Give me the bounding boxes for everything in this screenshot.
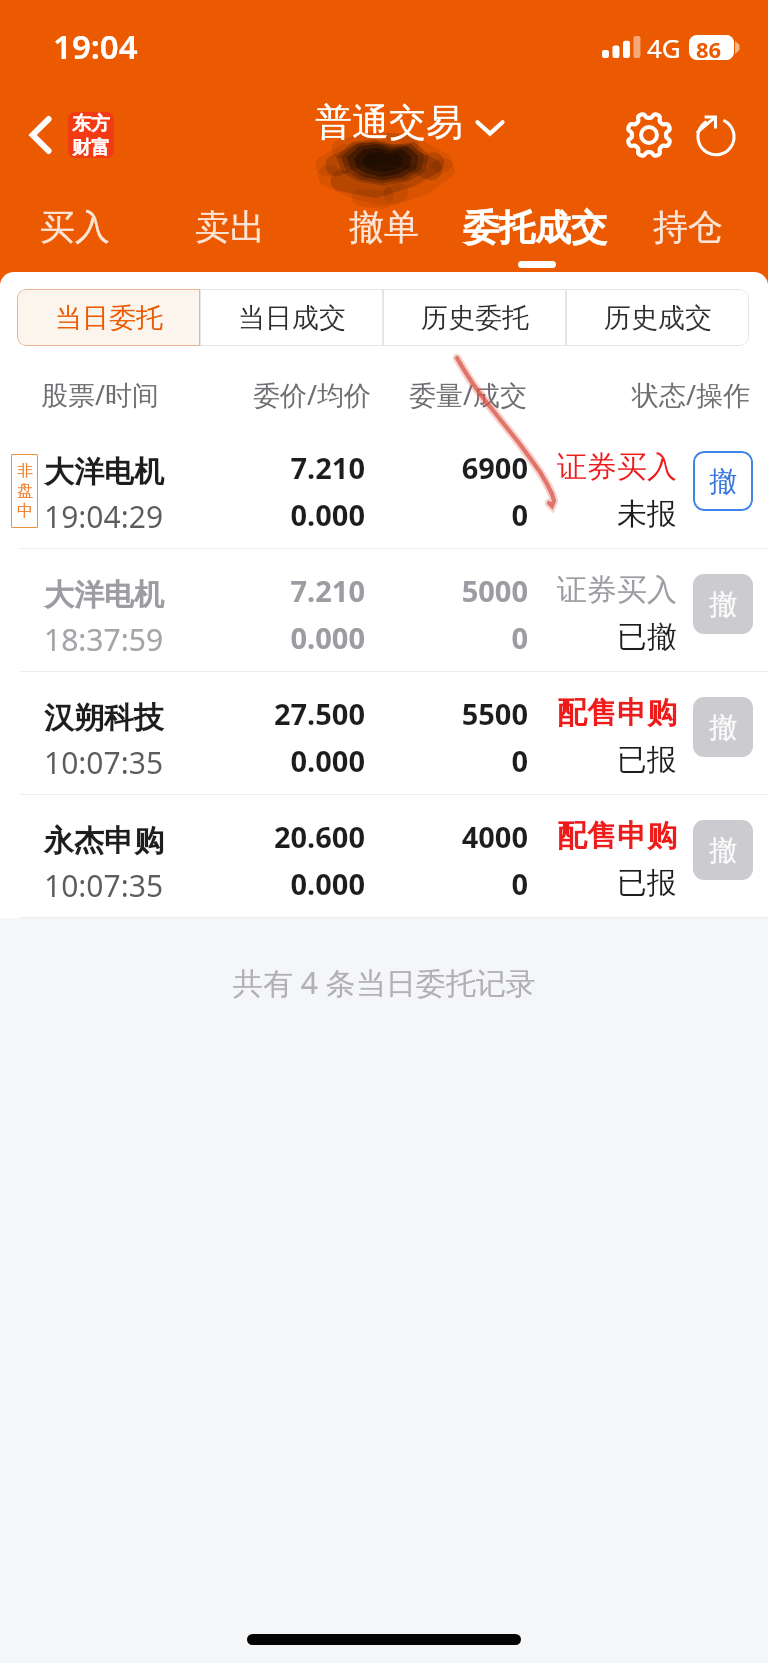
button[interactable]: 撤单 [693, 574, 753, 634]
staticText: 7.210 [290, 448, 365, 487]
staticText: 大洋电机 [44, 576, 164, 614]
button[interactable]: 汉朔科技 [0, 672, 768, 795]
staticText: 撤 [709, 833, 737, 868]
staticText: 配售申购 [557, 694, 677, 732]
button[interactable]: 撤单 [693, 697, 753, 757]
staticText: 4000 [461, 817, 528, 856]
staticText: 永杰申购 [44, 822, 164, 860]
staticText: 0.000 [290, 864, 365, 903]
button[interactable]: 卖出 [173, 188, 287, 266]
button[interactable]: 普通交易 [315, 99, 509, 146]
button[interactable]: 撤单 [693, 820, 753, 880]
button[interactable]: 撤单 [327, 188, 441, 266]
button[interactable]: 大洋电机 [0, 549, 768, 672]
staticText: 19:04 [53, 24, 138, 69]
staticText: 盘 [17, 481, 33, 501]
staticText: 撤 [709, 710, 737, 745]
staticText: 汉朔科技 [44, 699, 164, 737]
button[interactable]: 当日委托 [17, 289, 200, 346]
staticText: 证券买入 [557, 571, 677, 609]
button[interactable]: 撤单 [693, 451, 753, 511]
staticText: 委价/均价 [253, 376, 372, 413]
staticText: 86 [696, 35, 722, 59]
staticText: 委量/成交 [409, 376, 528, 413]
staticText: 状态/操作 [632, 376, 751, 413]
staticText: 委托成交 [463, 205, 607, 250]
staticText: 配售申购 [557, 817, 677, 855]
staticText: 已报 [617, 741, 677, 779]
staticText: 持仓 [653, 205, 723, 249]
button[interactable]: 持仓 [631, 188, 745, 266]
staticText: 19:04:29 [44, 496, 164, 537]
staticText: 已撤 [617, 618, 677, 656]
staticText: 大洋电机 [44, 453, 164, 491]
staticText: 0 [511, 495, 528, 534]
button[interactable]: 东方财富 [68, 112, 114, 158]
staticText: 当日成交 [238, 301, 346, 335]
button[interactable]: 永杰申购 [0, 795, 768, 918]
staticText: 10:07:35 [44, 865, 164, 906]
staticText: 买入 [40, 205, 110, 249]
button[interactable]: 刷新 [688, 107, 744, 163]
button[interactable]: 设置 [621, 107, 677, 163]
staticText: 股票/时间 [41, 376, 160, 413]
staticText: 历史成交 [604, 301, 712, 335]
staticText: 7.210 [290, 571, 365, 610]
button[interactable]: 历史成交 [566, 289, 749, 346]
staticText: 5500 [461, 694, 528, 733]
staticText: 0.000 [290, 495, 365, 534]
staticText: 中 [17, 501, 33, 521]
staticText: 0 [511, 618, 528, 657]
staticText: 撤单 [349, 205, 419, 249]
staticText: 0 [511, 741, 528, 780]
staticText: 6900 [461, 448, 528, 487]
staticText: 非 [17, 461, 33, 481]
staticText: 普通交易 [315, 99, 463, 146]
staticText: 历史委托 [421, 301, 529, 335]
staticText: 0 [511, 864, 528, 903]
staticText: 20.600 [273, 817, 365, 856]
staticText: 已报 [617, 864, 677, 902]
staticText: 27.500 [273, 694, 365, 733]
staticText: 撤 [709, 587, 737, 622]
staticText: 4G [647, 30, 681, 65]
button[interactable]: 历史委托 [383, 289, 566, 346]
staticText: 共有 4 条当日委托记录 [233, 962, 536, 1003]
staticText: 卖出 [195, 205, 265, 249]
button[interactable]: 委托成交 [441, 188, 629, 266]
staticText: 当日委托 [55, 301, 163, 335]
staticText: 证券买入 [557, 448, 677, 486]
staticText: 0.000 [290, 741, 365, 780]
staticText: 10:07:35 [44, 742, 164, 783]
staticText: 未报 [617, 495, 677, 533]
staticText: 18:37:59 [44, 619, 164, 660]
staticText: 东方 [72, 112, 110, 136]
staticText: 财富 [72, 136, 110, 158]
button[interactable]: 非 [0, 426, 768, 549]
staticText: 5000 [461, 571, 528, 610]
button[interactable]: 返回 [17, 111, 65, 159]
staticText: 0.000 [290, 618, 365, 657]
button[interactable]: 当日成交 [200, 289, 383, 346]
staticText: 撤 [709, 464, 737, 499]
button[interactable]: 买入 [18, 188, 132, 266]
